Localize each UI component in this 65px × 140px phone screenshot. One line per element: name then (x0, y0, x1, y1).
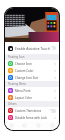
button[interactable]: Enable Assistive Touch (5, 42, 59, 54)
staticText: Disable Some with Lock (15, 116, 47, 120)
button[interactable]: Custom Transitions (5, 107, 59, 114)
staticText: Custom Transitions (15, 109, 42, 113)
staticText: Enable Assistive Touch (15, 46, 50, 50)
button[interactable]: Tools (18, 121, 31, 130)
staticText: Floating Icon (8, 55, 25, 59)
staticText: Layout Color (15, 96, 33, 100)
staticText: Change Icon Size (15, 76, 39, 80)
button[interactable]: Home (5, 121, 18, 130)
staticText: Menu Point (15, 89, 31, 93)
button[interactable]: Change Icon Size (5, 74, 59, 81)
button[interactable]: Disable Some with Lock (5, 114, 59, 121)
staticText: Custom Color (15, 69, 34, 73)
button[interactable]: Menu Point (5, 87, 59, 94)
button[interactable]: Toggle (49, 109, 56, 113)
button[interactable]: Custom Color (5, 67, 59, 74)
staticText: Others (8, 102, 17, 106)
staticText: Choose Icon (15, 62, 32, 66)
staticText: Floating Menu (8, 82, 27, 86)
button[interactable]: Apps (31, 121, 45, 130)
button[interactable]: Me (45, 121, 59, 130)
button[interactable]: Toggle (50, 46, 56, 50)
button[interactable]: Choose Icon (5, 60, 59, 67)
button[interactable]: Layout Color (5, 94, 59, 101)
